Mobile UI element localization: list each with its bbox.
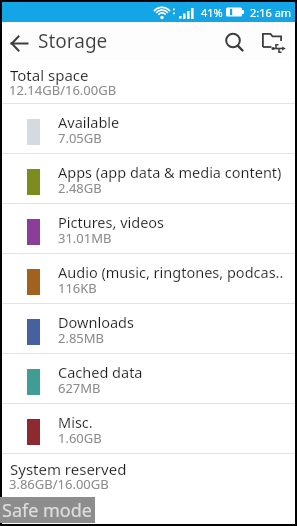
- staticText: 2.48GB: [58, 179, 102, 197]
- staticText: 1.60GB: [58, 429, 102, 447]
- staticText: 3.86GB/16.00GB: [9, 475, 109, 493]
- staticText: 627MB: [58, 379, 101, 397]
- staticText: Cached data: [58, 362, 143, 382]
- staticText: 2:16 am: [250, 5, 292, 20]
- staticText: 41%: [201, 5, 223, 20]
- staticText: 116KB: [58, 279, 97, 297]
- staticText: 2.85MB: [58, 329, 105, 347]
- button[interactable]: [253, 22, 295, 60]
- staticText: System reserved: [10, 459, 127, 479]
- button[interactable]: Misc.: [2, 404, 295, 453]
- button[interactable]: [2, 22, 38, 60]
- button[interactable]: Available: [2, 104, 295, 153]
- staticText: 7.05GB: [58, 129, 102, 147]
- button[interactable]: [217, 22, 253, 60]
- button[interactable]: Apps (app data & media content): [2, 154, 295, 203]
- staticText: Safe mode: [2, 498, 92, 523]
- staticText: 31.01MB: [58, 229, 112, 247]
- staticText: Downloads: [58, 312, 134, 332]
- staticText: Available: [58, 112, 120, 132]
- button[interactable]: Downloads: [2, 304, 295, 353]
- staticText: 12.14GB/16.00GB: [9, 81, 117, 99]
- staticText: Total space: [10, 65, 89, 85]
- staticText: Storage: [38, 28, 108, 54]
- button[interactable]: Pictures, videos: [2, 204, 295, 253]
- staticText: Misc.: [58, 412, 93, 432]
- staticText: Pictures, videos: [58, 212, 165, 232]
- staticText: Apps (app data & media content): [58, 162, 282, 182]
- staticText: Audio (music, ringtones, podcas..: [58, 262, 284, 282]
- button[interactable]: Audio (music, ringtones, podcas..: [2, 254, 295, 303]
- button[interactable]: Cached data: [2, 354, 295, 403]
